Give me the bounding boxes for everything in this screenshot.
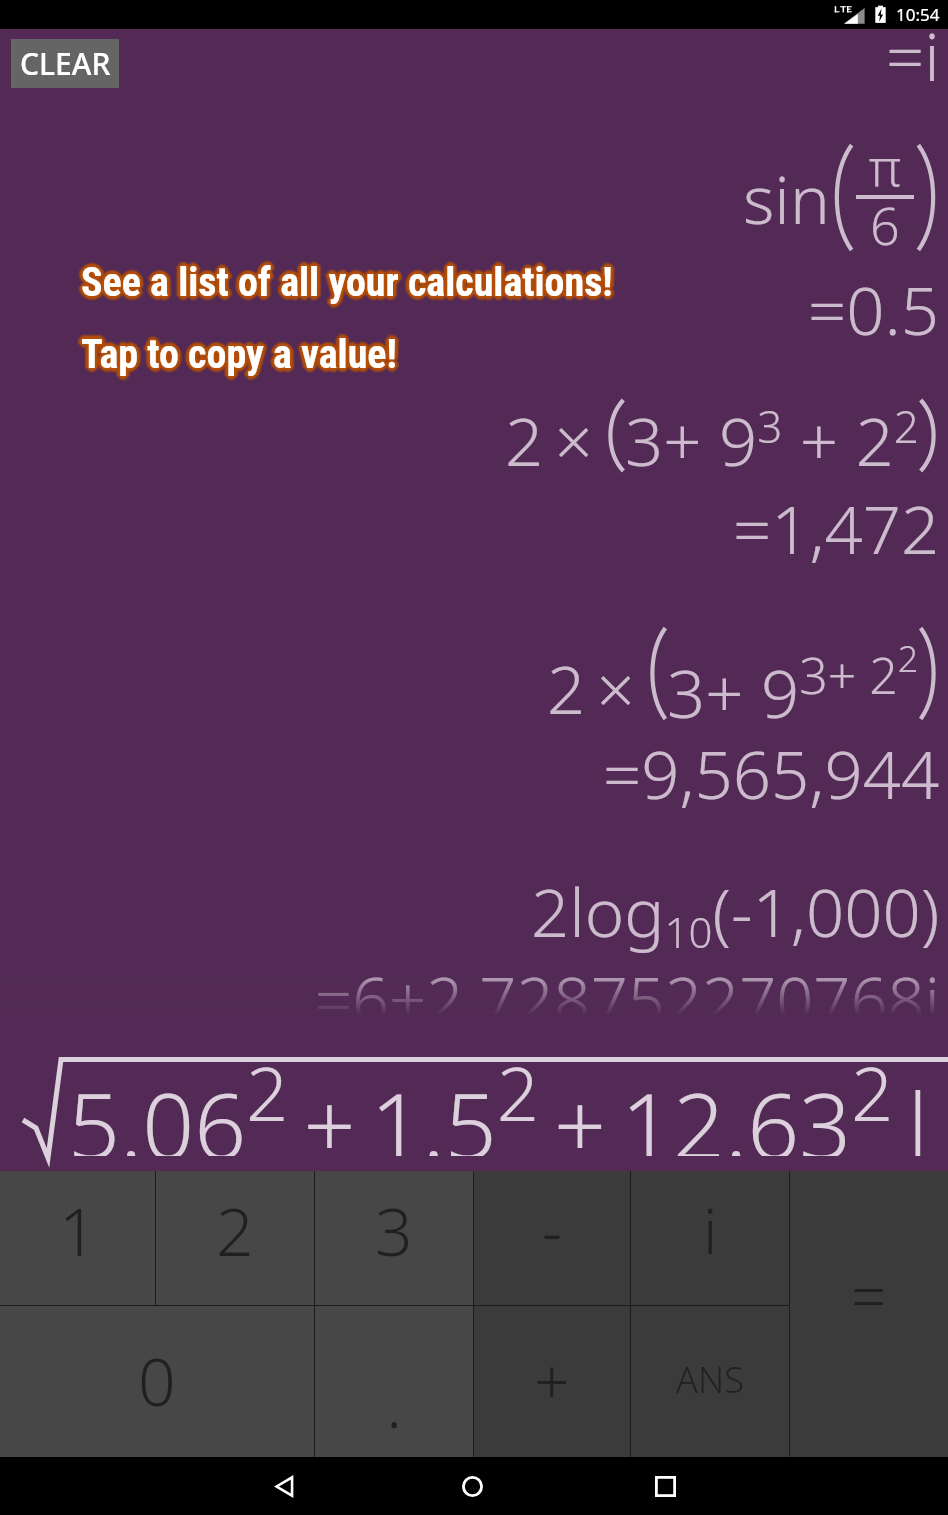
staticText: Tap to copy a value! [76,331,392,378]
staticText: Tap to copy a value! [80,333,396,380]
staticText: See a list of all your calculations! [79,256,611,303]
staticText: See a list of all your calculations! [84,260,616,307]
staticText: See a list of all your calculations! [85,257,617,304]
staticText: See a list of all your calculations! [83,263,615,310]
staticText: 10:54 [896,3,940,26]
staticText: Tap to copy a value! [82,329,398,376]
staticText: See a list of all your calculations! [84,259,616,306]
staticText: + [534,1338,570,1422]
staticText: Tap to copy a value! [81,328,397,375]
staticText: See a list of all your calculations! [82,258,614,305]
staticText: =i [886,9,940,100]
staticText: See a list of all your calculations! [81,264,613,311]
staticText: Tap to copy a value! [80,329,396,376]
staticText: See a list of all your calculations! [81,256,613,303]
button[interactable]: Back [255,1457,313,1515]
button[interactable]: 0 [0,1306,314,1457]
staticText: See a list of all your calculations! [82,259,614,306]
staticText: See a list of all your calculations! [86,259,618,306]
staticText: See a list of all your calculations! [79,258,611,305]
staticText: See a list of all your calculations! [76,259,608,306]
staticText: See a list of all your calculations! [77,259,609,306]
staticText: See a list of all your calculations! [81,261,613,308]
staticText: 2 [216,1185,254,1275]
staticText: - [542,1188,562,1272]
staticText: See a list of all your calculations! [82,260,614,307]
staticText: 2log10(-1,000) [531,865,940,960]
staticText: Tap to copy a value! [82,332,398,379]
staticText: See a list of all your calculations! [77,261,609,308]
staticText: sin [743,152,830,243]
staticText: Tap to copy a value! [81,335,397,382]
staticText: 1 [59,1185,97,1275]
staticText: See a list of all your calculations! [83,258,615,305]
staticText: Tap to copy a value! [77,331,393,378]
staticText: i [703,1188,718,1272]
staticText: Tap to copy a value! [83,332,399,379]
staticText: Tap to copy a value! [84,331,400,378]
button[interactable]: Recents [636,1457,694,1515]
staticText: =1,472 [733,482,940,573]
staticText: See a list of all your calculations! [83,259,615,306]
staticText: Tap to copy a value! [83,330,399,377]
staticText: See a list of all your calculations! [80,261,612,308]
staticText: See a list of all your calculations! [82,261,614,308]
button[interactable]: 2 [156,1171,314,1305]
staticText: Tap to copy a value! [85,333,401,380]
staticText: See a list of all your calculations! [83,256,615,303]
staticText: Tap to copy a value! [80,331,396,378]
staticText: Tap to copy a value! [85,331,401,378]
button[interactable]: 1 [0,1171,155,1305]
staticText: Tap to copy a value! [80,334,396,381]
staticText: Tap to copy a value! [84,332,400,379]
staticText: See a list of all your calculations! [81,255,613,302]
staticText: 3 [375,1185,413,1275]
staticText: Tap to copy a value! [85,329,401,376]
staticText: 0 [138,1335,176,1425]
staticText: ANS [676,1355,744,1404]
staticText: See a list of all your calculations! [79,260,611,307]
staticText: Tap to copy a value! [81,327,397,374]
staticText: Tap to copy a value! [78,330,394,377]
staticText: Tap to copy a value! [79,335,395,382]
staticText: Tap to copy a value! [81,329,397,376]
staticText: Tap to copy a value! [79,330,395,377]
staticText: See a list of all your calculations! [78,258,610,305]
staticText: Tap to copy a value! [78,332,394,379]
staticText: Tap to copy a value! [81,334,397,381]
staticText: Tap to copy a value! [83,331,399,378]
staticText: See a list of all your calculations! [81,263,613,310]
staticText: See a list of all your calculations! [84,257,616,304]
button[interactable]: Home [443,1457,501,1515]
staticText: Tap to copy a value! [83,327,399,374]
staticText: Tap to copy a value! [83,334,399,381]
staticText: =6+2.728752270768i [315,955,940,1044]
staticText: See a list of all your calculations! [80,259,612,306]
staticText: See a list of all your calculations! [79,259,611,306]
staticText: Tap to copy a value! [84,329,400,376]
button[interactable]: 3 [315,1171,473,1305]
staticText: =9,565,944 [603,727,940,818]
staticText: Tap to copy a value! [82,330,398,377]
staticText: Tap to copy a value! [81,332,397,379]
staticText: See a list of all your calculations! [77,257,609,304]
staticText: Tap to copy a value! [81,331,397,378]
staticText: Tap to copy a value! [80,331,396,378]
staticText: See a list of all your calculations! [81,259,613,306]
staticText: Tap to copy a value! [77,329,393,376]
staticText: 2 × [505,394,604,485]
button[interactable]: CLEAR [11,39,119,88]
staticText: CLEAR [20,43,111,84]
staticText: 3+ 93 + 22 [625,394,919,485]
staticText: See a list of all your calculations! [83,262,615,309]
staticText: See a list of all your calculations! [78,260,610,307]
staticText: See a list of all your calculations! [81,254,613,301]
staticText: Tap to copy a value! [78,331,394,378]
staticText: Tap to copy a value! [79,331,395,378]
